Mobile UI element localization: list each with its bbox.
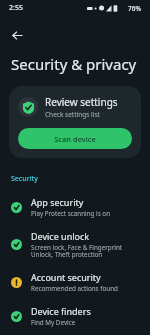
staticText: Screen lock, Face & Fingerprint Unlock, … (31, 243, 140, 259)
staticText: 2:55 (9, 3, 23, 13)
staticText: Device finders (31, 305, 91, 317)
staticText: Security (11, 174, 38, 184)
button[interactable]: Device finders (0, 299, 150, 333)
staticText: Check settings list (45, 110, 100, 119)
button[interactable]: Account security (0, 265, 150, 299)
button[interactable]: App security (0, 190, 150, 224)
button[interactable]: Review settings (9, 86, 141, 158)
staticText: Scan device (54, 134, 96, 144)
button[interactable]: Scan device (18, 128, 132, 149)
staticText: Recommended actions found (31, 284, 118, 293)
staticText: App security (31, 196, 84, 208)
staticText: Account security (31, 271, 101, 283)
button[interactable]: Back (6, 24, 28, 46)
staticText: Review settings (45, 95, 118, 109)
staticText: 76% (128, 4, 141, 13)
staticText: Play Protect scanning is on (31, 209, 111, 218)
button[interactable]: Device unlock (0, 224, 150, 265)
staticText: Device unlock (31, 230, 90, 242)
staticText: Find My Device (31, 318, 76, 327)
staticText: Security & privacy (11, 54, 137, 74)
